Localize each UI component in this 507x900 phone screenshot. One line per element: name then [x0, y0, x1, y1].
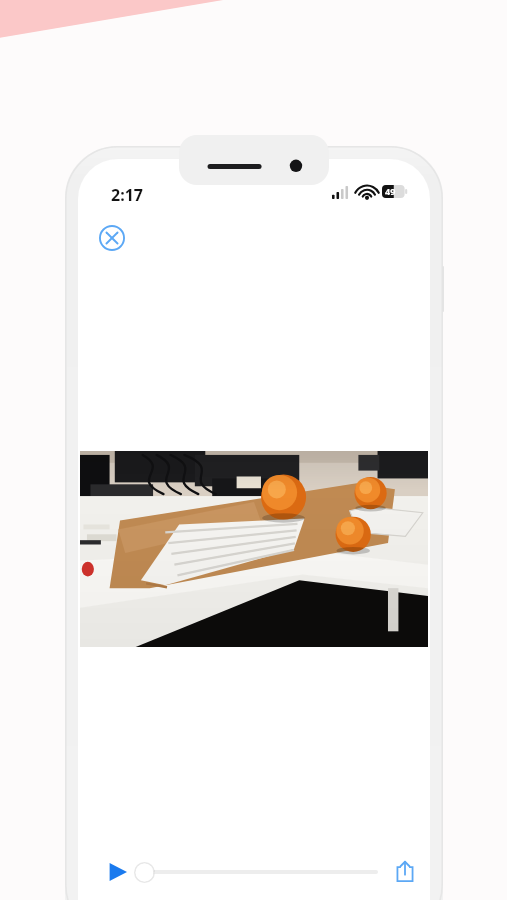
button[interactable]: Play: [103, 857, 133, 887]
button[interactable]: Share: [391, 857, 419, 885]
button[interactable]: Close: [99, 225, 125, 251]
staticText: 49: [385, 185, 396, 197]
button[interactable]: Seek: [134, 862, 155, 883]
staticText: 2:17: [111, 184, 143, 206]
